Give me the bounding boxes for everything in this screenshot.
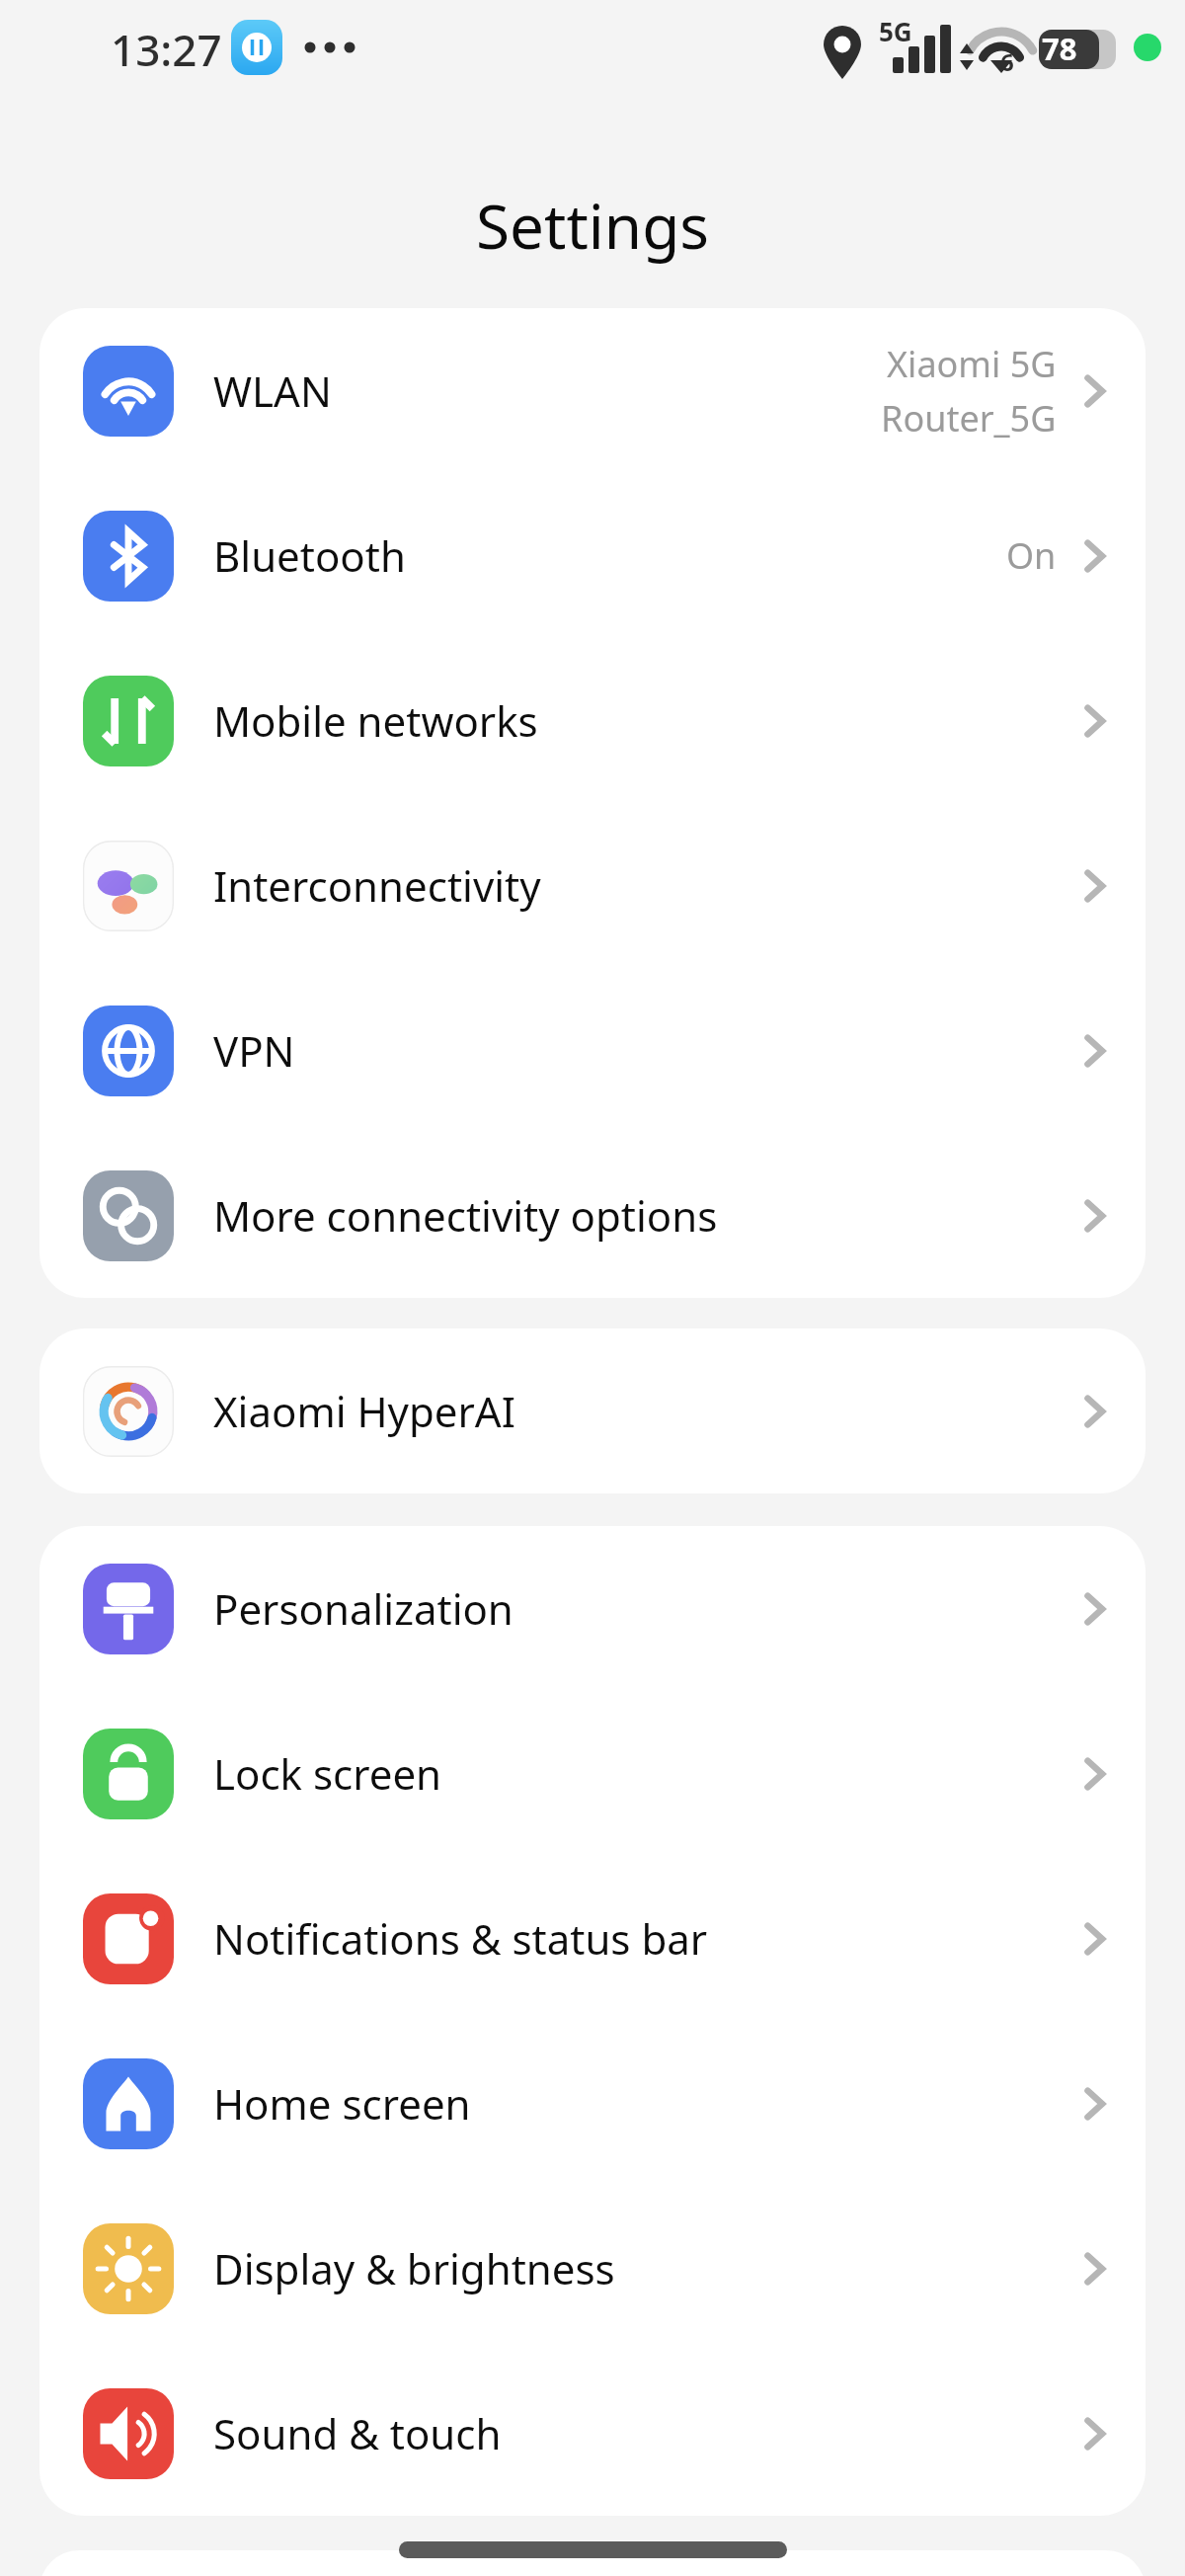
staticText: More connectivity options xyxy=(213,1187,718,1244)
staticText: 5G xyxy=(879,14,912,48)
button[interactable]: Home screen xyxy=(39,2021,1145,2186)
button[interactable]: Notifications & status bar xyxy=(39,1856,1145,2021)
button[interactable]: Display & brightness xyxy=(39,2186,1145,2351)
staticText: Mobile networks xyxy=(213,692,538,749)
staticText: On xyxy=(1006,531,1057,580)
staticText: Router_5G xyxy=(881,394,1057,443)
button[interactable]: WLAN xyxy=(39,308,1145,473)
button[interactable]: Mobile networks xyxy=(39,638,1145,803)
button[interactable]: More connectivity options xyxy=(39,1133,1145,1298)
staticText: Xiaomi HyperAI xyxy=(213,1383,515,1439)
button[interactable]: Xiaomi HyperAI xyxy=(39,1328,1145,1493)
button[interactable]: VPN xyxy=(39,968,1145,1133)
staticText: Display & brightness xyxy=(213,2240,615,2296)
button[interactable]: Bluetooth xyxy=(39,473,1145,638)
staticText: Notifications & status bar xyxy=(213,1910,708,1967)
staticText: Personalization xyxy=(213,1580,513,1637)
staticText: Home screen xyxy=(213,2075,471,2132)
staticText: 6 xyxy=(1000,45,1014,78)
staticText: Bluetooth xyxy=(213,527,406,584)
staticText: Lock screen xyxy=(213,1745,442,1802)
button[interactable]: Lock screen xyxy=(39,1691,1145,1856)
staticText: Xiaomi 5G xyxy=(887,340,1057,388)
staticText: Settings xyxy=(0,184,1185,267)
staticText: WLAN xyxy=(213,362,332,419)
staticText: 78 xyxy=(1042,28,1077,69)
button[interactable]: Interconnectivity xyxy=(39,803,1145,968)
button[interactable]: Sound & touch xyxy=(39,2351,1145,2516)
button[interactable]: Personalization xyxy=(39,1526,1145,1691)
staticText: Interconnectivity xyxy=(213,857,541,914)
staticText: VPN xyxy=(213,1022,295,1079)
staticText: 13:27 xyxy=(111,20,222,79)
staticText: Sound & touch xyxy=(213,2405,502,2461)
